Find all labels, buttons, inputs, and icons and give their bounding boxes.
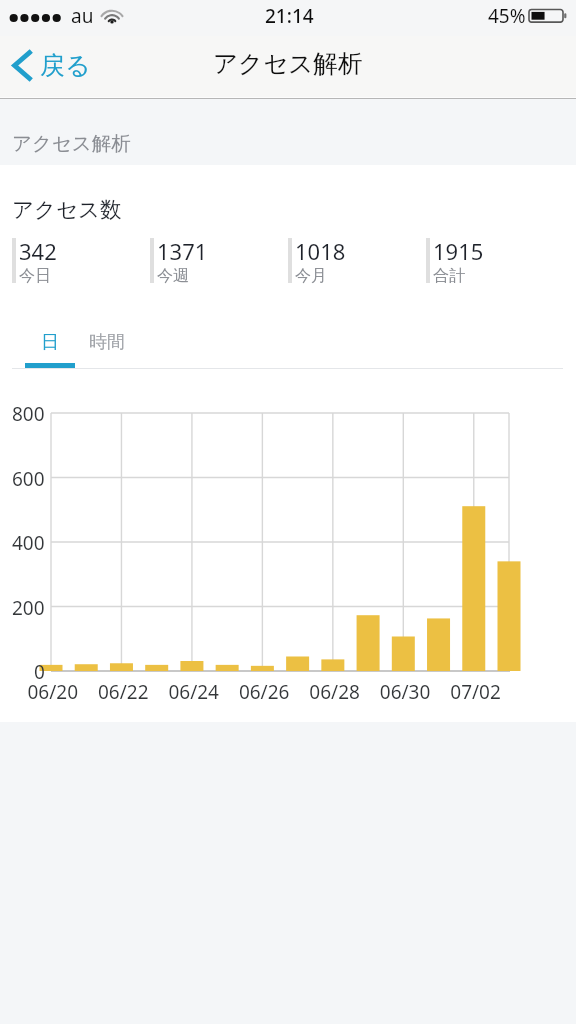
staticText: 1018	[295, 236, 346, 266]
staticText: 戻る	[40, 50, 91, 81]
staticText: 今週	[157, 266, 189, 286]
staticText: 342	[19, 236, 57, 266]
button[interactable]: 日	[25, 325, 75, 368]
staticText: 1915	[433, 236, 484, 266]
staticText: 今月	[295, 266, 327, 286]
staticText: 1371	[157, 236, 208, 266]
staticText: アクセス解析	[12, 131, 131, 156]
button[interactable]: 時間	[80, 325, 134, 368]
staticText: 45%	[488, 3, 526, 29]
staticText: 合計	[433, 266, 465, 286]
staticText: 今日	[19, 266, 51, 286]
staticText: アクセス数	[12, 196, 122, 223]
staticText: アクセス解析	[213, 48, 363, 79]
staticText: 日	[41, 331, 59, 354]
button[interactable]: 戻る	[0, 37, 101, 99]
staticText: au	[71, 3, 94, 29]
staticText: 時間	[89, 331, 125, 354]
staticText: 21:14	[265, 3, 314, 29]
